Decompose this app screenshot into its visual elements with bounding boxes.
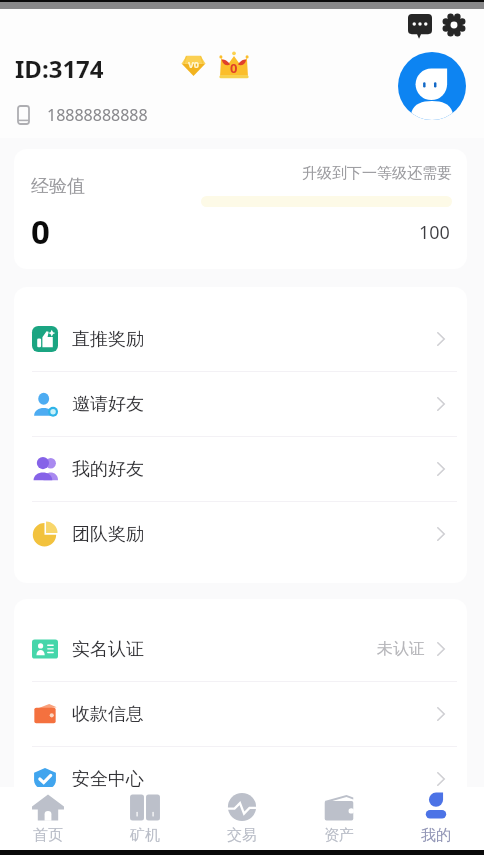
staticText: 安全中心 (72, 768, 144, 791)
staticText: 升级到下一等级还需要 (302, 164, 452, 183)
button[interactable]: 我的 (387, 787, 484, 850)
button[interactable]: 实名认证 (14, 617, 467, 681)
button[interactable]: 矿机 (96, 787, 193, 850)
staticText: 实名认证 (72, 638, 144, 661)
button[interactable]: 我的好友 (14, 437, 467, 501)
button[interactable]: 交易 (193, 787, 290, 850)
staticText: ID:3174 (15, 52, 104, 85)
staticText: 团队奖励 (72, 523, 144, 546)
staticText: V0 (188, 58, 199, 70)
button[interactable]: 直推奖励 (14, 307, 467, 371)
staticText: 我的 (421, 826, 451, 845)
staticText: 经验值 (31, 175, 85, 198)
button[interactable]: Settings (438, 9, 470, 41)
staticText: 直推奖励 (72, 328, 144, 351)
staticText: 18888888888 (47, 104, 148, 126)
staticText: 矿机 (130, 826, 160, 845)
staticText: 0 (230, 59, 238, 77)
button[interactable]: 首页 (0, 787, 96, 850)
staticText: 资产 (324, 826, 354, 845)
button[interactable]: 收款信息 (14, 682, 467, 746)
staticText: 收款信息 (72, 703, 144, 726)
button[interactable]: Avatar (398, 52, 466, 120)
button[interactable]: 邀请好友 (14, 372, 467, 436)
button[interactable]: Messages (404, 10, 436, 42)
staticText: 首页 (33, 826, 63, 845)
button[interactable]: 团队奖励 (14, 502, 467, 566)
button[interactable]: 资产 (290, 787, 387, 850)
staticText: 我的好友 (72, 458, 144, 481)
button[interactable]: 安全中心 (14, 747, 467, 811)
staticText: 未认证 (377, 639, 425, 659)
staticText: 100 (419, 220, 450, 245)
staticText: 0 (31, 209, 50, 254)
staticText: 交易 (227, 826, 257, 845)
staticText: 邀请好友 (72, 393, 144, 416)
